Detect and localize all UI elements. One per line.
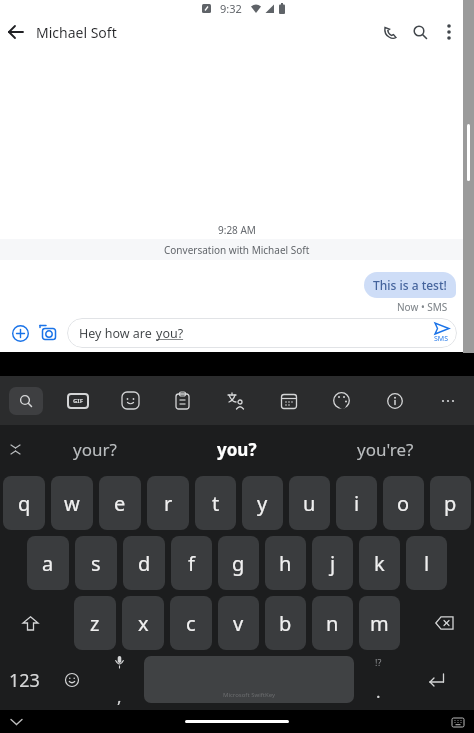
staticText: g [232,550,245,577]
button[interactable] [375,17,405,47]
staticText: i [354,490,360,517]
staticText: z [90,610,100,637]
staticText: x [138,610,149,637]
button[interactable] [209,376,262,425]
button[interactable]: s [75,536,117,590]
staticText: u [303,490,316,517]
staticText: s [91,550,101,577]
staticText: w [64,490,80,517]
button[interactable]: , [108,653,130,706]
button[interactable]: j [312,536,353,590]
button[interactable]: o [383,476,424,530]
staticText: h [279,550,292,577]
staticText: k [374,550,385,577]
staticText: b [279,610,292,637]
staticText: j [330,550,336,577]
button[interactable] [0,16,32,48]
staticText: o [397,490,410,517]
button[interactable] [315,376,368,425]
button[interactable]: !? [366,653,390,706]
button[interactable]: x [122,596,164,650]
button[interactable] [156,376,209,425]
staticText: Hey how are [79,325,156,342]
button[interactable]: SMS [434,323,449,344]
button[interactable]: Hey how are [67,318,457,348]
staticText: you're? [357,438,414,461]
staticText: n [326,610,339,637]
staticText: l [424,550,430,577]
staticText: Microsoft SwiftKey [223,691,275,699]
staticText: d [138,550,151,577]
button[interactable]: l [406,536,447,590]
button[interactable] [8,321,32,345]
staticText: p [444,490,457,517]
staticText: q [18,490,31,517]
button[interactable]: Michael Soft [36,23,117,42]
staticText: m [370,610,389,637]
staticText: you? [217,438,257,461]
button[interactable] [262,376,315,425]
button[interactable] [0,376,52,425]
staticText: 9:32 [220,1,242,16]
staticText: !? [375,656,382,668]
button[interactable]: you? [158,425,316,473]
button[interactable] [58,666,86,694]
button[interactable]: k [359,536,400,590]
button[interactable]: m [359,596,400,650]
button[interactable]: 123 [4,660,44,700]
staticText: you? [156,325,184,342]
button[interactable]: w [51,476,93,530]
staticText: c [186,610,196,637]
button[interactable]: t [195,476,236,530]
button[interactable]: q [3,476,45,530]
staticText: y [257,490,268,517]
staticText: Now • SMS [397,300,448,312]
staticText: This is a test! [373,277,447,293]
button[interactable] [36,321,60,345]
button[interactable] [450,714,466,730]
button[interactable]: f [171,536,212,590]
button[interactable] [435,18,463,46]
button[interactable]: y [242,476,283,530]
button[interactable]: GIF [52,376,104,425]
button[interactable]: This is a test! [364,272,456,298]
button[interactable]: u [289,476,330,530]
staticText: . [376,680,381,703]
staticText: f [188,550,195,577]
button[interactable]: b [265,596,306,650]
button[interactable]: i [336,476,377,530]
staticText: your? [73,438,117,461]
button[interactable]: c [170,596,212,650]
staticText: e [114,490,126,517]
staticText: , [117,685,122,706]
button[interactable]: n [312,596,353,650]
button[interactable] [421,376,474,425]
button[interactable] [405,17,435,47]
button[interactable] [422,665,452,695]
staticText: r [164,490,173,517]
staticText: SMS [434,334,449,344]
button[interactable] [8,714,24,730]
staticText: 9:28 AM [218,223,256,237]
button[interactable]: h [265,536,306,590]
button[interactable] [0,593,60,653]
button[interactable]: your? [0,425,190,473]
button[interactable]: Microsoft SwiftKey [144,656,354,703]
button[interactable]: z [74,596,116,650]
button[interactable]: a [27,536,69,590]
button[interactable] [104,376,156,425]
button[interactable] [368,376,421,425]
button[interactable]: v [218,596,259,650]
button[interactable]: e [99,476,141,530]
button[interactable]: d [123,536,165,590]
staticText: 123 [9,668,40,693]
button[interactable]: g [218,536,259,590]
button[interactable] [415,593,474,653]
button[interactable] [185,720,289,723]
button[interactable]: r [147,476,189,530]
staticText: GIF [73,397,83,405]
button[interactable]: you're? [296,425,474,473]
staticText: a [42,550,54,577]
staticText: Conversation with Michael Soft [164,243,310,257]
button[interactable]: p [430,476,471,530]
